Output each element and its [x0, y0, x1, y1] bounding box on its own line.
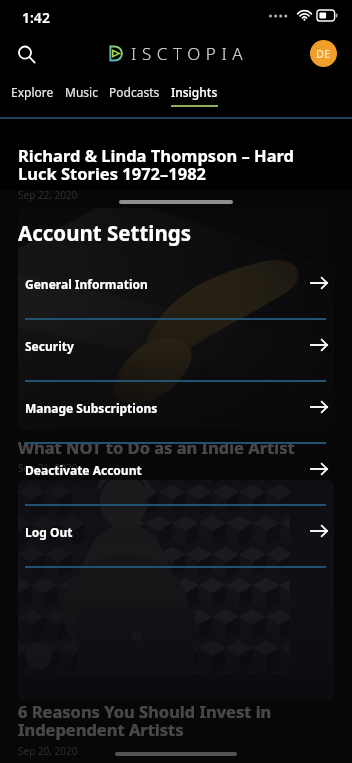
- button[interactable]: General Information: [0, 258, 352, 320]
- staticText: What NOT to Do as an Indie Artist: [18, 436, 295, 458]
- button[interactable]: Security: [0, 320, 352, 382]
- staticText: Sep 21, 2020: [18, 461, 78, 475]
- staticText: Account Settings: [18, 219, 192, 247]
- staticText: Deactivate Account: [25, 462, 142, 478]
- staticText: DE: [316, 46, 331, 61]
- button[interactable]: Music: [65, 75, 98, 107]
- button[interactable]: Podcasts: [109, 75, 160, 107]
- button[interactable]: 6 Reasons You Should Invest in Independe…: [0, 700, 352, 758]
- staticText: Music: [65, 84, 98, 100]
- staticText: General Information: [25, 276, 148, 292]
- staticText: ISCTOPIA: [131, 42, 249, 65]
- staticText: Insights: [171, 84, 218, 100]
- staticText: Manage Subscriptions: [25, 400, 158, 416]
- staticText: Log Out: [25, 524, 73, 540]
- button[interactable]: Search: [9, 37, 43, 71]
- button[interactable]: Log Out: [0, 506, 352, 568]
- button[interactable]: Profile: [310, 40, 337, 67]
- staticText: 1:42: [22, 8, 50, 27]
- staticText: Richard & Linda Thompson – Hard Luck Sto…: [18, 144, 316, 185]
- button[interactable]: What NOT to Do as an Indie Artist: [0, 436, 352, 475]
- staticText: Sep 20, 2020: [18, 744, 78, 758]
- staticText: Podcasts: [109, 84, 160, 100]
- button[interactable]: Deactivate Account: [0, 444, 352, 506]
- staticText: Sep 22, 2020: [18, 188, 78, 202]
- button[interactable]: Manage Subscriptions: [0, 382, 352, 444]
- button[interactable]: Explore: [11, 75, 54, 107]
- button[interactable]: Insights: [171, 75, 218, 107]
- staticText: Security: [25, 338, 74, 354]
- staticText: Explore: [11, 84, 54, 100]
- button[interactable]: Richard & Linda Thompson – Hard Luck Sto…: [0, 144, 352, 202]
- staticText: 6 Reasons You Should Invest in Independe…: [18, 700, 282, 741]
